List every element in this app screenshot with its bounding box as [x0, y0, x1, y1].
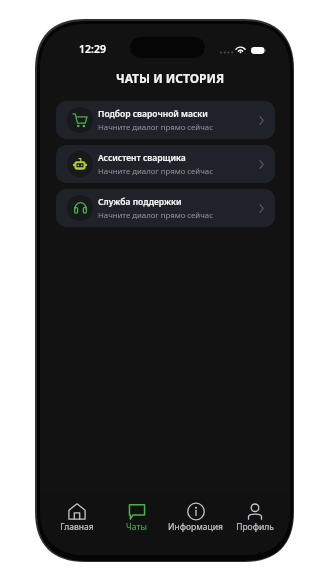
button[interactable]: Home — [47, 503, 107, 533]
staticText: Ассистент сварщика — [98, 152, 186, 164]
staticText: Начните диалог прямо сейчас — [98, 210, 213, 221]
staticText: Служба поддержки — [98, 196, 182, 208]
button[interactable]: Ассистент сварщика — [56, 145, 275, 183]
staticText: Подбор сварочной маски — [98, 108, 208, 120]
staticText: Чаты — [126, 521, 147, 533]
button[interactable]: Profile — [225, 503, 284, 533]
staticText: Профиль — [236, 521, 274, 533]
staticText: ЧАТЫ И ИСТОРИЯ — [116, 70, 225, 86]
staticText: Информация — [168, 521, 223, 533]
staticText: 12:29 — [79, 42, 106, 56]
button[interactable]: Подбор сварочной маски — [56, 101, 275, 139]
staticText: Начните диалог прямо сейчас — [98, 166, 213, 177]
staticText: Начните диалог прямо сейчас — [98, 122, 213, 133]
staticText: Главная — [60, 521, 94, 533]
button[interactable]: Chats — [107, 503, 166, 533]
button[interactable]: Information — [166, 503, 225, 533]
button[interactable]: Служба поддержки — [56, 189, 275, 227]
